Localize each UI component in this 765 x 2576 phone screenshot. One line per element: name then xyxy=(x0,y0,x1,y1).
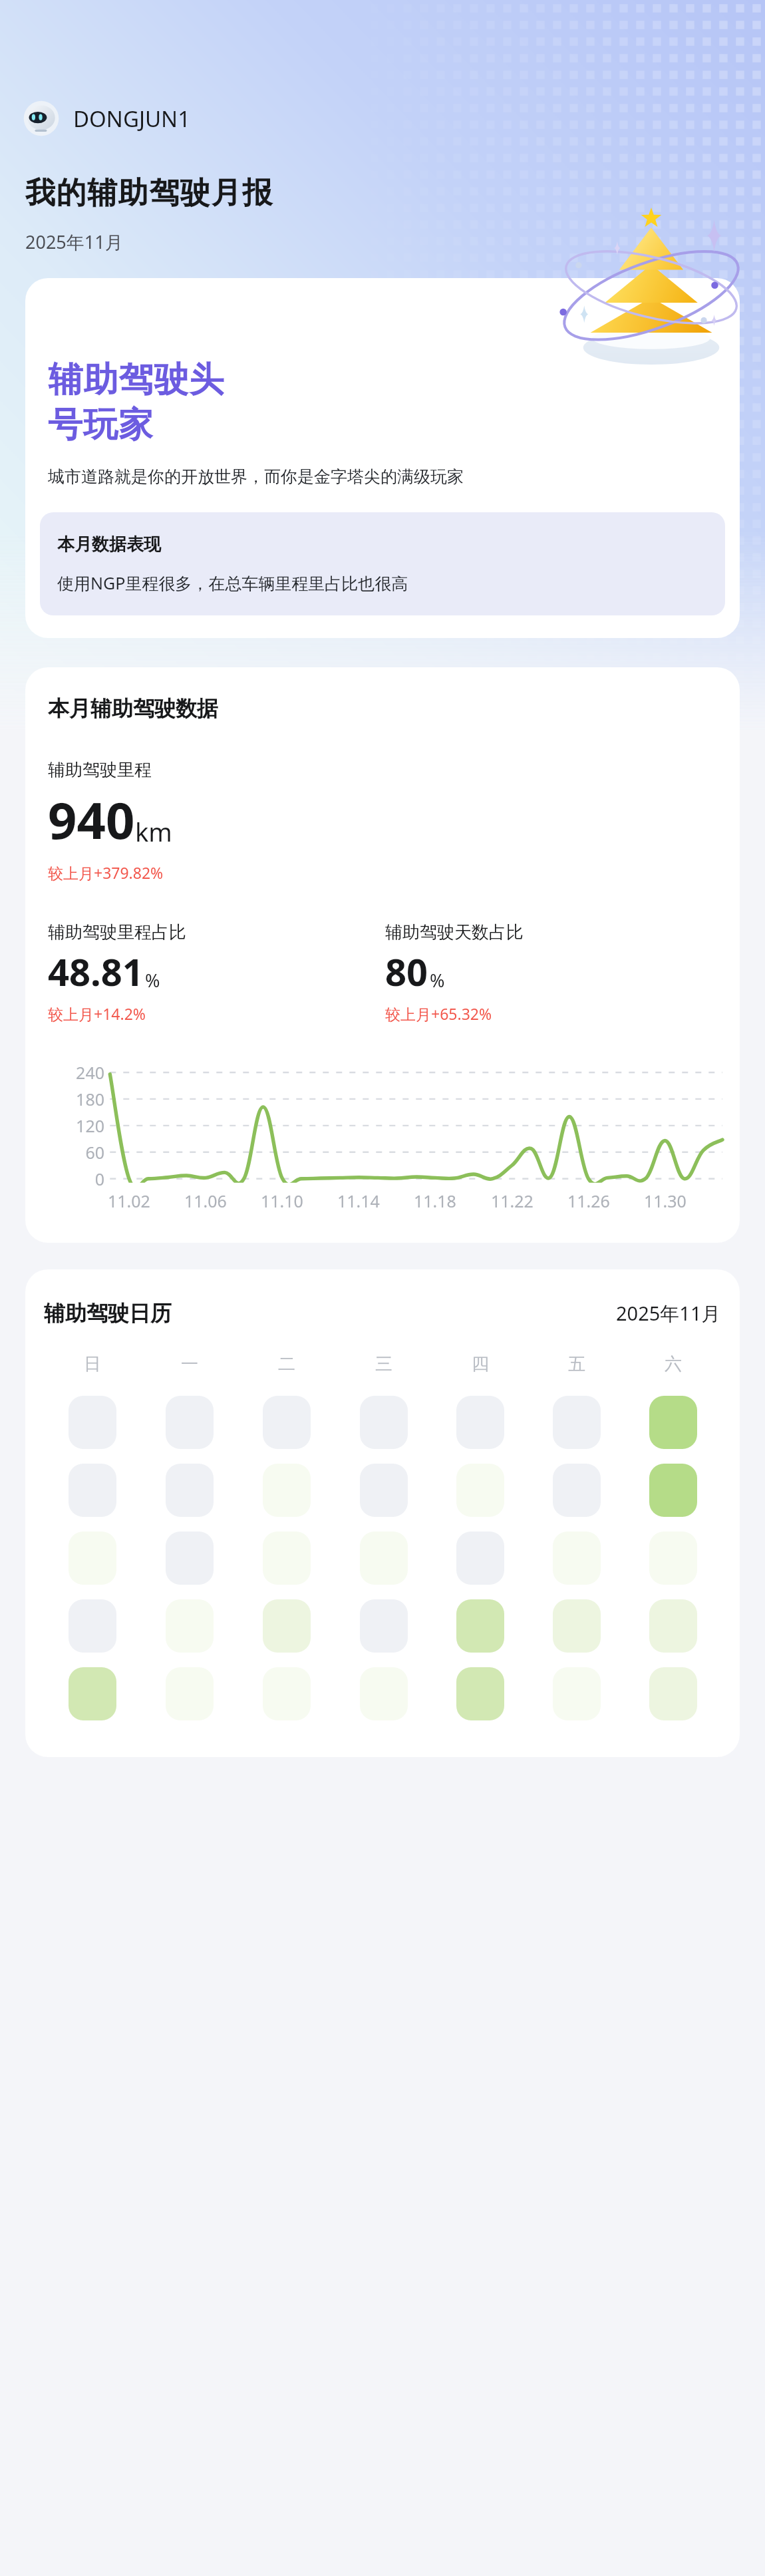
button[interactable]: 辅助驾驶日历 xyxy=(25,1269,740,1757)
staticText: 使用NGP里程很多，在总车辆里程里占比也很高 xyxy=(57,571,408,594)
staticText: 我的辅助驾驶月报 xyxy=(25,174,273,212)
button[interactable] xyxy=(360,1531,408,1585)
staticText: 940 xyxy=(48,785,135,854)
staticText: % xyxy=(145,968,160,993)
staticText: 辅助驾驶里程 xyxy=(48,759,152,781)
button[interactable] xyxy=(166,1464,214,1517)
staticText: 48.81 xyxy=(48,946,144,997)
staticText: 辅助驾驶里程占比 xyxy=(48,921,186,943)
button[interactable] xyxy=(166,1667,214,1720)
button[interactable]: 本月数据表现 xyxy=(40,512,725,615)
staticText: 城市道路就是你的开放世界，而你是金字塔尖的满级玩家 xyxy=(48,466,464,487)
staticText: 2025年11月 xyxy=(25,230,123,254)
button[interactable] xyxy=(166,1396,214,1449)
staticText: 80 xyxy=(385,946,428,997)
button[interactable] xyxy=(456,1667,504,1720)
staticText: 11.26 xyxy=(567,1190,610,1212)
staticText: 240 xyxy=(76,1061,104,1084)
staticText: km xyxy=(135,814,172,849)
staticText: 一 xyxy=(181,1353,198,1375)
button[interactable] xyxy=(553,1396,601,1449)
button[interactable] xyxy=(649,1667,697,1720)
button[interactable] xyxy=(263,1667,311,1720)
staticText: 四 xyxy=(472,1353,489,1375)
staticText: 120 xyxy=(76,1114,104,1137)
button[interactable] xyxy=(553,1599,601,1653)
button[interactable] xyxy=(553,1667,601,1720)
button[interactable]: User avatar xyxy=(23,100,191,137)
button[interactable]: 辅助驾驶天数占比 xyxy=(385,921,722,1024)
staticText: % xyxy=(430,968,445,993)
staticText: 六 xyxy=(665,1353,682,1375)
staticText: 60 xyxy=(85,1141,104,1164)
button[interactable] xyxy=(456,1599,504,1653)
staticText: 11.02 xyxy=(108,1190,150,1212)
staticText: 辅助驾驶日历 xyxy=(44,1300,172,1327)
button[interactable] xyxy=(456,1396,504,1449)
staticText: 辅助驾驶天数占比 xyxy=(385,921,524,943)
staticText: 0 xyxy=(94,1168,104,1190)
button[interactable] xyxy=(456,1464,504,1517)
staticText: 11.30 xyxy=(644,1190,687,1212)
button[interactable] xyxy=(69,1667,116,1720)
button[interactable] xyxy=(263,1531,311,1585)
button[interactable] xyxy=(166,1531,214,1585)
staticText: 较上月+14.2% xyxy=(48,1003,146,1024)
button[interactable] xyxy=(263,1599,311,1653)
button[interactable] xyxy=(263,1396,311,1449)
button[interactable]: 辅助驾驶里程占比 xyxy=(48,921,385,1024)
staticText: 180 xyxy=(76,1088,104,1110)
button[interactable] xyxy=(456,1531,504,1585)
staticText: 11.14 xyxy=(337,1190,380,1212)
staticText: 五 xyxy=(568,1353,585,1375)
staticText: 11.22 xyxy=(491,1190,534,1212)
staticText: 较上月+65.32% xyxy=(385,1003,492,1024)
staticText: 三 xyxy=(375,1353,392,1375)
staticText: 2025年11月 xyxy=(616,1300,721,1327)
button[interactable] xyxy=(166,1599,214,1653)
button[interactable] xyxy=(360,1599,408,1653)
button[interactable]: 辅助驾驶头 号玩家 xyxy=(25,278,740,638)
staticText: 本月数据表现 xyxy=(57,534,161,556)
button[interactable] xyxy=(553,1531,601,1585)
staticText: 二 xyxy=(278,1353,295,1375)
button[interactable]: 本月辅助驾驶数据 xyxy=(25,667,740,1243)
button[interactable] xyxy=(649,1599,697,1653)
button[interactable] xyxy=(649,1464,697,1517)
button[interactable] xyxy=(69,1464,116,1517)
button[interactable] xyxy=(553,1464,601,1517)
staticText: 11.10 xyxy=(261,1190,303,1212)
button[interactable] xyxy=(649,1531,697,1585)
button[interactable] xyxy=(360,1464,408,1517)
staticText: 11.18 xyxy=(414,1190,456,1212)
button[interactable] xyxy=(69,1599,116,1653)
staticText: 较上月+379.82% xyxy=(48,862,164,883)
button[interactable] xyxy=(263,1464,311,1517)
button[interactable] xyxy=(360,1396,408,1449)
staticText: 本月辅助驾驶数据 xyxy=(48,695,218,722)
staticText: 辅助驾驶头 号玩家 xyxy=(48,358,224,446)
button[interactable] xyxy=(649,1396,697,1449)
button[interactable] xyxy=(360,1667,408,1720)
staticText: 日 xyxy=(84,1353,101,1375)
button[interactable] xyxy=(69,1531,116,1585)
other: User avatar xyxy=(23,100,60,137)
staticText: DONGJUN1 xyxy=(73,104,191,134)
button[interactable] xyxy=(69,1396,116,1449)
staticText: 11.06 xyxy=(184,1190,227,1212)
